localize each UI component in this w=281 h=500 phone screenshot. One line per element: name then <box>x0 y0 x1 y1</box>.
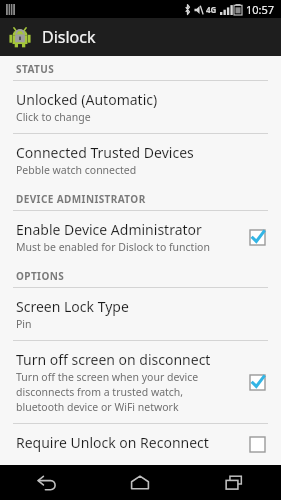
button[interactable]: Turn off screen on disconnect <box>0 341 281 423</box>
button[interactable]: Require Unlock on Reconnect <box>0 424 281 465</box>
staticText: Enable Device Administrator <box>16 220 202 239</box>
staticText: 4G <box>206 4 217 15</box>
staticText: Click to change <box>16 110 91 124</box>
button[interactable]: Recent apps <box>187 465 281 500</box>
staticText: Pebble watch connected <box>16 163 137 177</box>
button[interactable]: Dislock app icon <box>0 18 281 56</box>
staticText: bluetooth device or WiFi network <box>16 400 179 414</box>
button[interactable]: Unlocked (Automatic) <box>0 81 281 133</box>
staticText: disconnects from a trusted watch, <box>16 385 184 399</box>
button[interactable]: Unchecked <box>245 433 269 456</box>
other: Dislock app icon <box>9 26 31 48</box>
button[interactable]: Connected Trusted Devices <box>0 134 281 186</box>
button[interactable]: Screen Lock Type <box>0 288 281 340</box>
staticText: Screen Lock Type <box>16 297 129 316</box>
staticText: OPTIONS <box>16 269 65 283</box>
staticText: 10:57 <box>246 2 275 17</box>
staticText: Turn off the screen when your device <box>16 370 199 384</box>
button[interactable]: Home <box>93 465 187 500</box>
button[interactable]: Enable Device Administrator <box>0 211 281 263</box>
staticText: STATUS <box>16 62 55 76</box>
button[interactable]: Checked <box>245 370 269 394</box>
button[interactable]: Back <box>0 465 93 500</box>
button[interactable]: Checked <box>245 225 269 249</box>
staticText: Pin <box>16 317 32 331</box>
staticText: Must be enabled for Dislock to function <box>16 240 210 254</box>
staticText: Turn off screen on disconnect <box>16 350 211 369</box>
staticText: Unlocked (Automatic) <box>16 90 158 109</box>
staticText: DEVICE ADMINISTRATOR <box>16 192 146 206</box>
staticText: Connected Trusted Devices <box>16 143 194 162</box>
staticText: Require Unlock on Reconnect <box>16 433 209 452</box>
staticText: Dislock <box>42 26 96 48</box>
